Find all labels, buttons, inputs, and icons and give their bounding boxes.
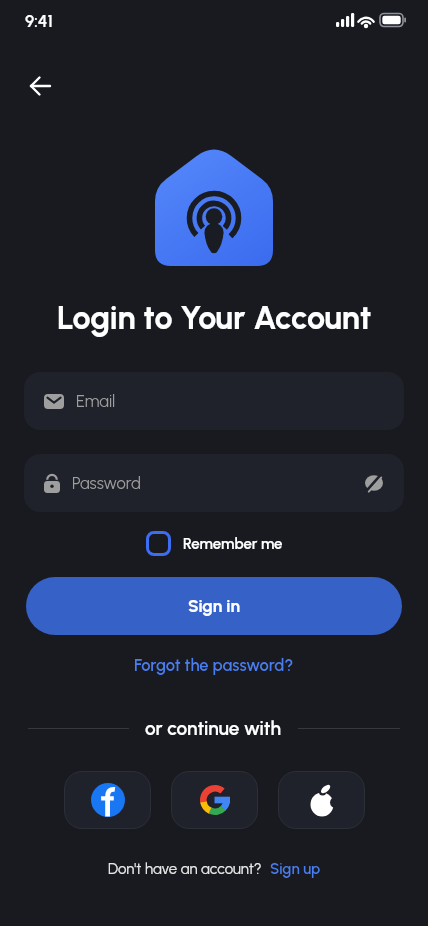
staticText: Forgot the password? (134, 655, 294, 675)
staticText: Login to Your Account (57, 298, 372, 337)
button[interactable]: Sign in (26, 577, 402, 635)
staticText: 9:41 (25, 11, 53, 31)
button[interactable]: Sign up (270, 860, 321, 878)
button[interactable] (64, 771, 151, 829)
staticText: Remember me (183, 535, 283, 553)
staticText: or continue with (145, 717, 282, 740)
staticText: Sign in (188, 596, 240, 616)
button[interactable] (278, 771, 365, 829)
button[interactable]: Forgot the password? (126, 651, 302, 679)
button[interactable] (24, 72, 56, 100)
staticText: Email (76, 391, 384, 411)
button[interactable] (171, 771, 258, 829)
staticText: Don't have an account? (108, 860, 262, 878)
button[interactable]: Email (24, 372, 404, 430)
staticText: Sign up (270, 860, 321, 878)
staticText: Password (72, 473, 364, 493)
button[interactable]: Remember me (146, 531, 283, 556)
button[interactable]: Password (24, 454, 404, 512)
